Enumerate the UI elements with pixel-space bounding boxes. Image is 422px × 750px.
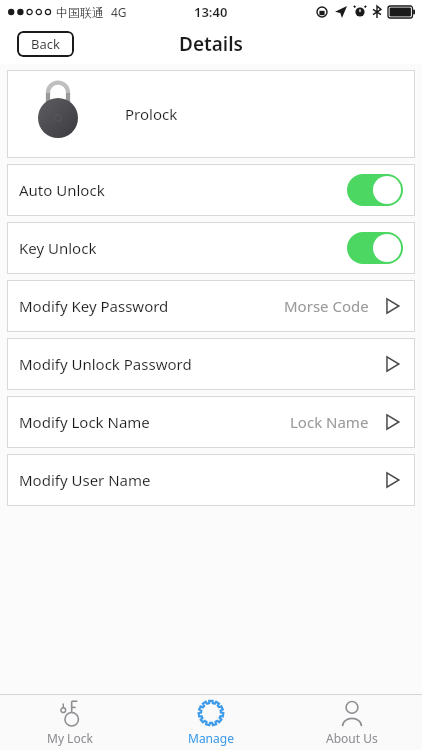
staticText: About Us bbox=[326, 730, 378, 746]
button[interactable]: Key Unlock toggle, on bbox=[347, 232, 403, 264]
staticText: Modify Unlock Password bbox=[19, 354, 383, 374]
staticText: Manage bbox=[188, 730, 234, 746]
staticText: 中国联通 bbox=[56, 5, 104, 20]
staticText: Prolock bbox=[125, 104, 178, 124]
button[interactable]: Modify Key Password bbox=[7, 280, 415, 332]
button[interactable]: My Lock bbox=[0, 695, 140, 750]
button[interactable]: Manage bbox=[140, 695, 281, 750]
staticText: 13:40 bbox=[194, 3, 228, 21]
button[interactable]: Auto Unlock toggle, on bbox=[347, 174, 403, 206]
button[interactable]: Modify Lock Name bbox=[7, 396, 415, 448]
staticText: Lock Name bbox=[290, 412, 369, 432]
button[interactable]: Key Unlock bbox=[7, 222, 415, 274]
staticText: 4G bbox=[111, 4, 127, 20]
staticText: Modify Key Password bbox=[19, 296, 284, 316]
button[interactable]: About Us bbox=[281, 695, 422, 750]
staticText: Modify Lock Name bbox=[19, 412, 290, 432]
button[interactable]: Prolock bbox=[7, 70, 415, 158]
staticText: Key Unlock bbox=[19, 238, 347, 258]
button[interactable]: Back bbox=[17, 31, 74, 57]
staticText: Morse Code bbox=[284, 296, 369, 316]
staticText: Back bbox=[31, 35, 60, 53]
staticText: Modify User Name bbox=[19, 470, 383, 490]
staticText: Details bbox=[179, 31, 243, 57]
button[interactable]: Modify User Name bbox=[7, 454, 415, 506]
staticText: Auto Unlock bbox=[19, 180, 347, 200]
staticText: My Lock bbox=[47, 730, 93, 746]
button[interactable]: Auto Unlock bbox=[7, 164, 415, 216]
button[interactable]: Modify Unlock Password bbox=[7, 338, 415, 390]
